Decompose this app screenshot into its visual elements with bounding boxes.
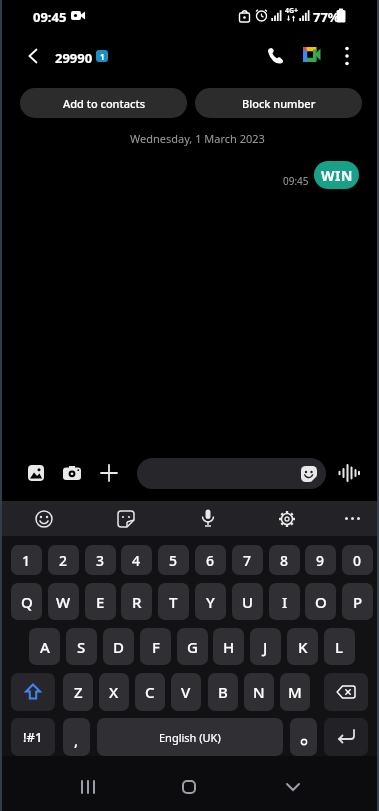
button[interactable]: 7 [232, 545, 263, 575]
button[interactable]: H [213, 628, 244, 665]
staticText: 3 [96, 551, 105, 570]
staticText: S [77, 637, 86, 657]
button[interactable]: 9 [305, 545, 336, 575]
button[interactable] [278, 510, 296, 528]
button[interactable]: V [171, 673, 201, 711]
staticText: English (UK) [159, 730, 221, 745]
staticText: F [152, 637, 160, 657]
staticText: 7 [243, 551, 252, 570]
staticText: J [263, 637, 268, 657]
button[interactable]: P [342, 583, 373, 620]
button[interactable]: S [66, 628, 97, 665]
button[interactable] [324, 718, 368, 756]
button[interactable]: F [140, 628, 171, 665]
staticText: Y [206, 592, 215, 612]
button[interactable]: C [135, 673, 165, 711]
staticText: 8 [280, 551, 289, 570]
button[interactable]: D [103, 628, 134, 665]
staticText: B [218, 682, 228, 702]
staticText: X [109, 682, 119, 702]
staticText: 09:45 [33, 8, 67, 26]
button[interactable]: N [244, 673, 274, 711]
button[interactable]: B [208, 673, 238, 711]
button[interactable]: 1 [11, 545, 42, 575]
staticText: O [315, 592, 327, 612]
staticText: 4G+ [285, 6, 299, 16]
button[interactable] [303, 47, 321, 62]
button[interactable] [182, 780, 196, 794]
staticText: WIN [321, 166, 353, 185]
button[interactable]: X [99, 673, 129, 711]
button[interactable]: Z [63, 673, 93, 711]
staticText: T [169, 592, 178, 612]
button[interactable]: 0 [342, 545, 373, 575]
staticText: A [40, 637, 50, 657]
button[interactable]: K [287, 628, 318, 665]
staticText: 4 [132, 551, 141, 570]
button[interactable]: W [48, 583, 79, 620]
button[interactable]: Block number [195, 88, 362, 118]
staticText: Z [74, 682, 83, 702]
button[interactable]: 6 [195, 545, 226, 575]
button[interactable]: , [63, 718, 90, 756]
button[interactable]: J [250, 628, 281, 665]
button[interactable] [35, 510, 53, 528]
button[interactable]: Q [11, 583, 42, 620]
button[interactable] [28, 465, 44, 481]
button[interactable] [80, 780, 96, 794]
staticText: K [298, 637, 308, 657]
staticText: W [56, 592, 71, 612]
staticText: E [96, 592, 105, 612]
staticText: G [187, 637, 198, 657]
staticText: M [288, 682, 302, 702]
button[interactable]: E [85, 583, 116, 620]
button[interactable]: L [324, 628, 355, 665]
staticText: 1 [100, 51, 105, 62]
button[interactable]: 8 [269, 545, 300, 575]
button[interactable] [324, 673, 368, 711]
staticText: L [335, 637, 344, 657]
button[interactable]: A [29, 628, 60, 665]
button[interactable] [137, 458, 326, 489]
button[interactable] [290, 718, 317, 756]
button[interactable]: Y [195, 583, 226, 620]
button[interactable] [201, 509, 215, 528]
button[interactable]: I [269, 583, 300, 620]
staticText: Q [21, 592, 33, 612]
button[interactable] [11, 673, 55, 711]
staticText: 77% [313, 8, 340, 26]
staticText: , [74, 730, 79, 750]
staticText: !#1 [23, 728, 43, 746]
button[interactable]: 2 [48, 545, 79, 575]
button[interactable] [267, 47, 284, 64]
button[interactable]: English (UK) [97, 718, 283, 756]
staticText: 9 [316, 551, 325, 570]
button[interactable] [63, 466, 81, 480]
button[interactable] [286, 782, 300, 792]
button[interactable] [341, 46, 353, 66]
staticText: 0 [353, 551, 362, 570]
button[interactable] [117, 510, 135, 528]
button[interactable]: O [305, 583, 336, 620]
staticText: Block number [242, 96, 316, 111]
button[interactable]: 4 [121, 545, 152, 575]
button[interactable]: M [280, 673, 310, 711]
button[interactable]: T [158, 583, 189, 620]
button[interactable]: R [121, 583, 152, 620]
button[interactable]: Add to contacts [20, 88, 187, 118]
button[interactable]: WIN [314, 161, 359, 189]
button[interactable]: 5 [158, 545, 189, 575]
button[interactable] [338, 463, 360, 483]
button[interactable]: G [177, 628, 208, 665]
button[interactable] [101, 465, 117, 481]
staticText: D [113, 637, 124, 657]
button[interactable]: !#1 [11, 718, 55, 756]
button[interactable]: U [232, 583, 263, 620]
staticText: C [145, 682, 155, 702]
button[interactable] [27, 48, 39, 64]
staticText: 6 [206, 551, 215, 570]
staticText: 1 [22, 551, 31, 570]
button[interactable]: 3 [85, 545, 116, 575]
button[interactable] [344, 516, 361, 521]
staticText: H [223, 637, 235, 657]
